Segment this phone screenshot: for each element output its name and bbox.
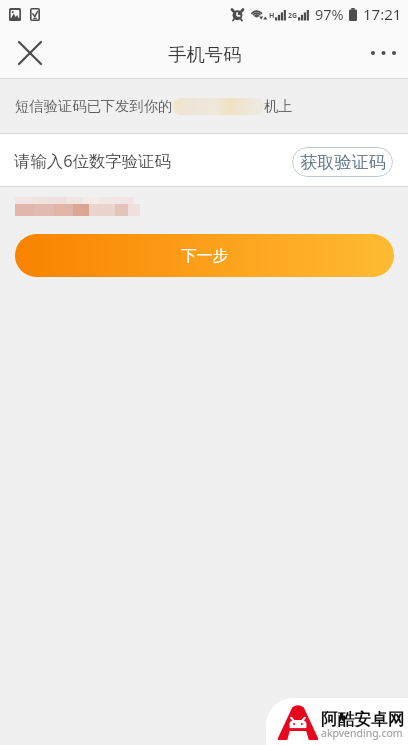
staticText: 手机号码 [168,43,242,66]
staticText: 获取验证码 [300,151,386,173]
staticText: 阿酷安卓网 [321,709,404,730]
button[interactable]: More options [362,31,405,74]
staticText: H [269,11,275,21]
button[interactable]: 下一步 [15,234,394,277]
staticText: 机上 [264,97,293,115]
staticText: 下一步 [181,246,229,266]
staticText: 2G [288,11,298,21]
button[interactable]: 获取验证码 [292,147,393,177]
staticText: 17:21 [363,4,402,24]
button[interactable]: Close [8,31,51,74]
staticText: 请输入6位数字验证码 [14,149,171,171]
staticText: 97% [315,4,344,24]
staticText: 短信验证码已下发到你的 [15,97,173,115]
staticText: akpvending.com [321,726,403,740]
